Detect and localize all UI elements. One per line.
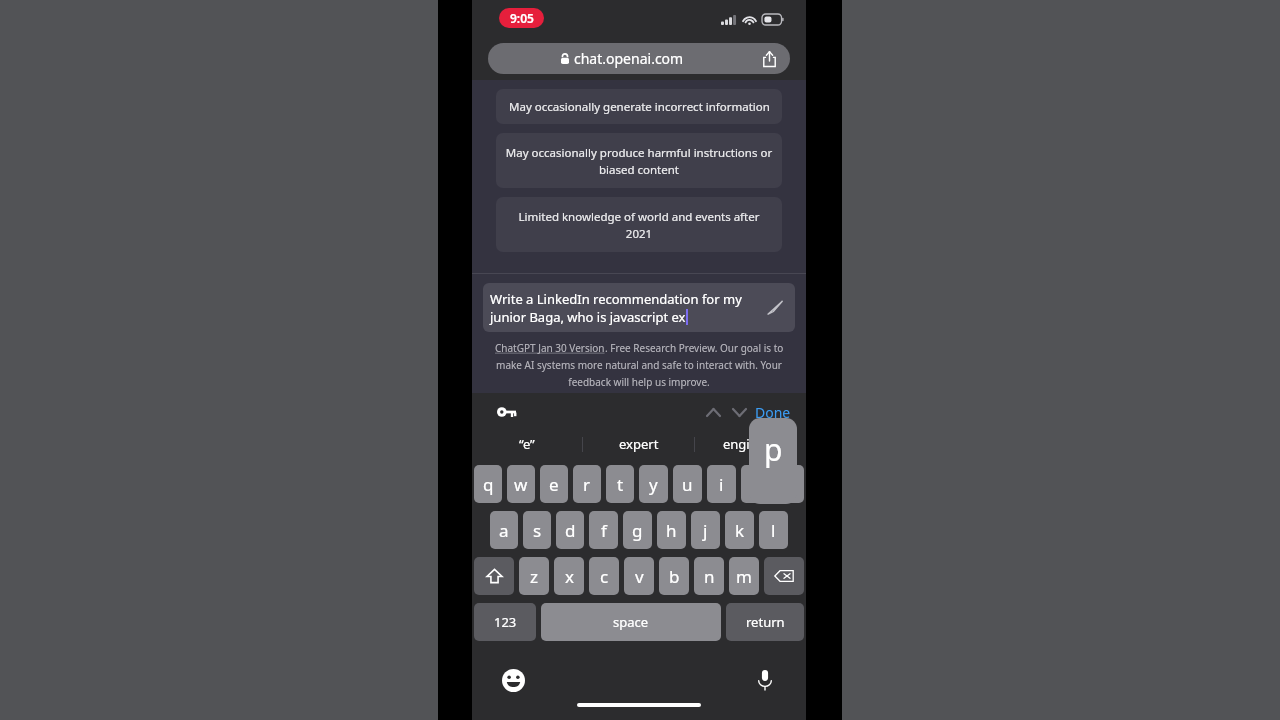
button[interactable]: w xyxy=(507,465,535,503)
staticText: chat.openai.com xyxy=(574,49,684,68)
button[interactable]: space xyxy=(541,603,721,641)
button[interactable]: j xyxy=(691,511,720,549)
button[interactable]: Done xyxy=(755,403,791,422)
button[interactable]: y xyxy=(639,465,668,503)
button[interactable]: o xyxy=(741,465,770,503)
staticText: t xyxy=(617,473,624,496)
staticText: w xyxy=(514,473,528,496)
staticText: 123 xyxy=(494,613,517,631)
button[interactable]: Shift xyxy=(474,557,514,595)
button[interactable]: Previous xyxy=(700,399,726,425)
staticText: v xyxy=(635,565,644,588)
button[interactable]: Backspace xyxy=(764,557,804,595)
staticText: n xyxy=(704,565,715,588)
button[interactable]: Dictation xyxy=(751,666,779,694)
button[interactable]: “e” xyxy=(472,430,582,458)
button[interactable]: return xyxy=(726,603,804,641)
button[interactable]: Write a LinkedIn recommendation for my xyxy=(483,283,795,332)
staticText: May occasionally generate incorrect info… xyxy=(509,99,770,115)
button[interactable]: engineer xyxy=(695,430,806,458)
staticText: z xyxy=(530,565,538,588)
staticText: b xyxy=(669,565,680,588)
button[interactable]: e xyxy=(540,465,568,503)
button[interactable]: m xyxy=(729,557,759,595)
staticText: Limited knowledge of world and events af… xyxy=(505,209,773,241)
button[interactable]: p xyxy=(775,465,804,503)
staticText: “e” xyxy=(519,435,535,453)
staticText: p xyxy=(764,429,783,470)
staticText: r xyxy=(583,473,591,496)
button[interactable]: x xyxy=(554,557,584,595)
button[interactable]: r xyxy=(573,465,601,503)
button[interactable]: n xyxy=(694,557,724,595)
button[interactable]: Passwords xyxy=(493,399,519,425)
button[interactable]: i xyxy=(707,465,736,503)
staticText: f xyxy=(601,519,607,542)
button[interactable]: d xyxy=(556,511,584,549)
staticText: 9:05 xyxy=(510,10,534,26)
button[interactable]: May occasionally generate incorrect info… xyxy=(496,89,782,124)
button[interactable]: h xyxy=(657,511,686,549)
staticText: i xyxy=(719,473,724,496)
staticText: q xyxy=(483,473,494,496)
button[interactable]: k xyxy=(725,511,754,549)
staticText: e xyxy=(549,473,559,496)
button[interactable]: chat.openai.com xyxy=(488,43,790,74)
button[interactable]: Emoji xyxy=(499,666,527,694)
button[interactable]: l xyxy=(759,511,788,549)
button[interactable]: u xyxy=(673,465,702,503)
staticText: . Free Research Preview. Our goal is to xyxy=(605,341,784,355)
staticText: feedback will help us improve. xyxy=(568,375,710,389)
button[interactable]: Send message xyxy=(764,297,786,319)
staticText: d xyxy=(565,519,576,542)
button[interactable]: z xyxy=(519,557,549,595)
button[interactable]: Share xyxy=(758,48,780,70)
staticText: l xyxy=(771,519,776,542)
staticText: space xyxy=(613,613,649,631)
staticText: May occasionally produce harmful instruc… xyxy=(505,145,773,177)
button[interactable]: f xyxy=(589,511,618,549)
staticText: c xyxy=(600,565,609,588)
button[interactable]: g xyxy=(623,511,652,549)
staticText: m xyxy=(736,565,752,588)
staticText: engineer xyxy=(723,435,778,453)
button[interactable]: v xyxy=(624,557,654,595)
button[interactable]: expert xyxy=(583,430,694,458)
button[interactable]: a xyxy=(490,511,518,549)
staticText: y xyxy=(649,473,658,496)
staticText: h xyxy=(666,519,677,542)
button[interactable]: Next xyxy=(726,399,752,425)
button[interactable]: s xyxy=(523,511,551,549)
button[interactable]: c xyxy=(589,557,619,595)
staticText: junior Baga, who is javascript ex xyxy=(490,308,686,326)
staticText: g xyxy=(632,519,643,542)
button[interactable]: Limited knowledge of world and events af… xyxy=(496,197,782,252)
button[interactable]: t xyxy=(606,465,634,503)
staticText: ChatGPT Jan 30 Version xyxy=(495,341,605,355)
staticText: s xyxy=(533,519,542,542)
staticText: j xyxy=(703,519,708,542)
staticText: x xyxy=(565,565,574,588)
staticText: return xyxy=(746,613,785,631)
button[interactable]: 123 xyxy=(474,603,536,641)
staticText: Write a LinkedIn recommendation for my xyxy=(490,290,742,308)
staticText: expert xyxy=(619,435,659,453)
staticText: Done xyxy=(755,403,791,422)
staticText: make AI systems more natural and safe to… xyxy=(496,358,782,372)
staticText: a xyxy=(499,519,509,542)
button[interactable]: b xyxy=(659,557,689,595)
staticText: u xyxy=(682,473,693,496)
button[interactable]: May occasionally produce harmful instruc… xyxy=(496,133,782,188)
staticText: k xyxy=(735,519,745,542)
button[interactable]: q xyxy=(474,465,502,503)
